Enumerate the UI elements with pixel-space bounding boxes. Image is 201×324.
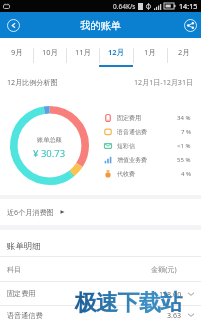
staticText: 2月 (178, 47, 190, 57)
staticText: 账单总额 (37, 136, 62, 144)
staticText: 55 % (177, 156, 191, 164)
staticText: 7 % (181, 128, 191, 136)
button[interactable]: 10月 (33, 38, 66, 68)
staticText: 金额(元) (151, 264, 177, 274)
staticText: 10月 (42, 47, 58, 57)
button[interactable]: 近6个月消费图 (0, 199, 201, 225)
button[interactable]: 1月 (133, 38, 167, 68)
staticText: 34 % (177, 114, 191, 122)
button[interactable]: 11月 (66, 38, 99, 68)
button[interactable]: 9月 (0, 38, 33, 68)
staticText: 12月比例分析图 (7, 77, 58, 87)
staticText: 12月1日-12月31日 (134, 77, 194, 87)
staticText: 我的账单 (80, 19, 121, 32)
staticText: 短彩信 (117, 142, 135, 150)
button[interactable]: 2月 (167, 38, 201, 68)
staticText: 固定费用 (117, 114, 141, 122)
staticText: 14:15 (179, 1, 198, 11)
staticText: 4 % (181, 170, 191, 178)
staticText: 9月 (11, 47, 23, 57)
staticText: 近6个月消费图 (7, 207, 54, 217)
staticText: 增值业务费 (117, 156, 147, 164)
staticText: 3.63 (167, 310, 182, 320)
button[interactable]: Back (3, 15, 23, 35)
staticText: 1月 (144, 47, 156, 57)
staticText: 科目 (7, 265, 22, 274)
button[interactable]: 固定费用 (0, 282, 201, 305)
staticText: 128.00 (159, 289, 182, 299)
staticText: ¥ 30.73 (33, 147, 66, 160)
staticText: 固定费用 (7, 289, 36, 298)
staticText: 0.64K/s (113, 2, 136, 11)
button[interactable]: 12月 (99, 38, 133, 68)
staticText: 11月 (75, 47, 91, 57)
staticText: <1 % (177, 142, 191, 150)
staticText: 代收费 (117, 170, 135, 178)
staticText: 极速下载站 (75, 289, 182, 317)
staticText: 语音通信费 (7, 311, 43, 320)
button[interactable]: Share (180, 15, 200, 35)
button[interactable]: 语音通信费 (0, 306, 201, 324)
staticText: 账单明细 (7, 241, 41, 252)
staticText: 12月 (108, 47, 124, 57)
staticText: 语音通信费 (117, 128, 147, 136)
